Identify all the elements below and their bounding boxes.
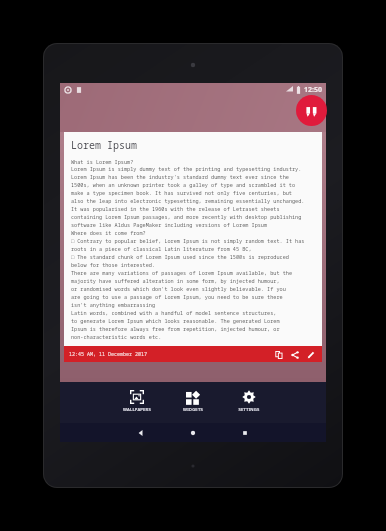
button[interactable]: SETTINGS xyxy=(229,388,269,415)
button[interactable]: Back xyxy=(121,423,161,442)
staticText: 12:50 xyxy=(304,85,322,95)
staticText: What is Lorem Ipsum? Lorem Ipsum is simp… xyxy=(71,158,305,341)
button[interactable]: Edit xyxy=(304,348,317,361)
staticText: SETTINGS xyxy=(238,407,260,413)
staticText: 12:45 AM, 11 December 2017 xyxy=(69,351,148,358)
button[interactable]: WIDGETS xyxy=(173,388,213,415)
button[interactable]: Lorem Ipsum xyxy=(64,132,322,362)
button[interactable]: Home xyxy=(173,423,213,442)
button[interactable]: WALLPAPERS xyxy=(117,388,157,415)
button[interactable]: Copy xyxy=(272,348,285,361)
button[interactable]: Recent apps xyxy=(225,423,265,442)
button[interactable]: New quote note xyxy=(296,95,327,126)
button[interactable]: Share xyxy=(288,348,301,361)
staticText: Lorem Ipsum xyxy=(71,138,137,152)
staticText: WALLPAPERS xyxy=(123,407,151,413)
staticText: WIDGETS xyxy=(183,407,203,413)
